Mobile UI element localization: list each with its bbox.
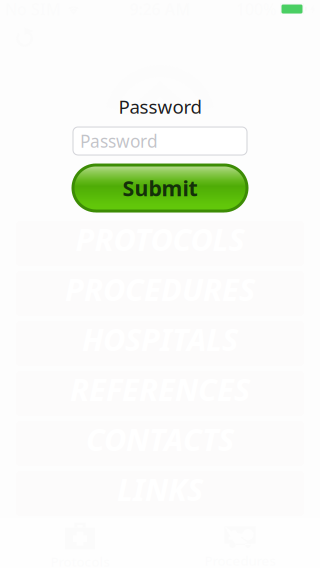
staticText: Password — [118, 94, 201, 119]
staticText: Submit — [122, 174, 197, 202]
button[interactable]: Submit — [73, 165, 247, 211]
staticText: Password — [80, 129, 158, 152]
